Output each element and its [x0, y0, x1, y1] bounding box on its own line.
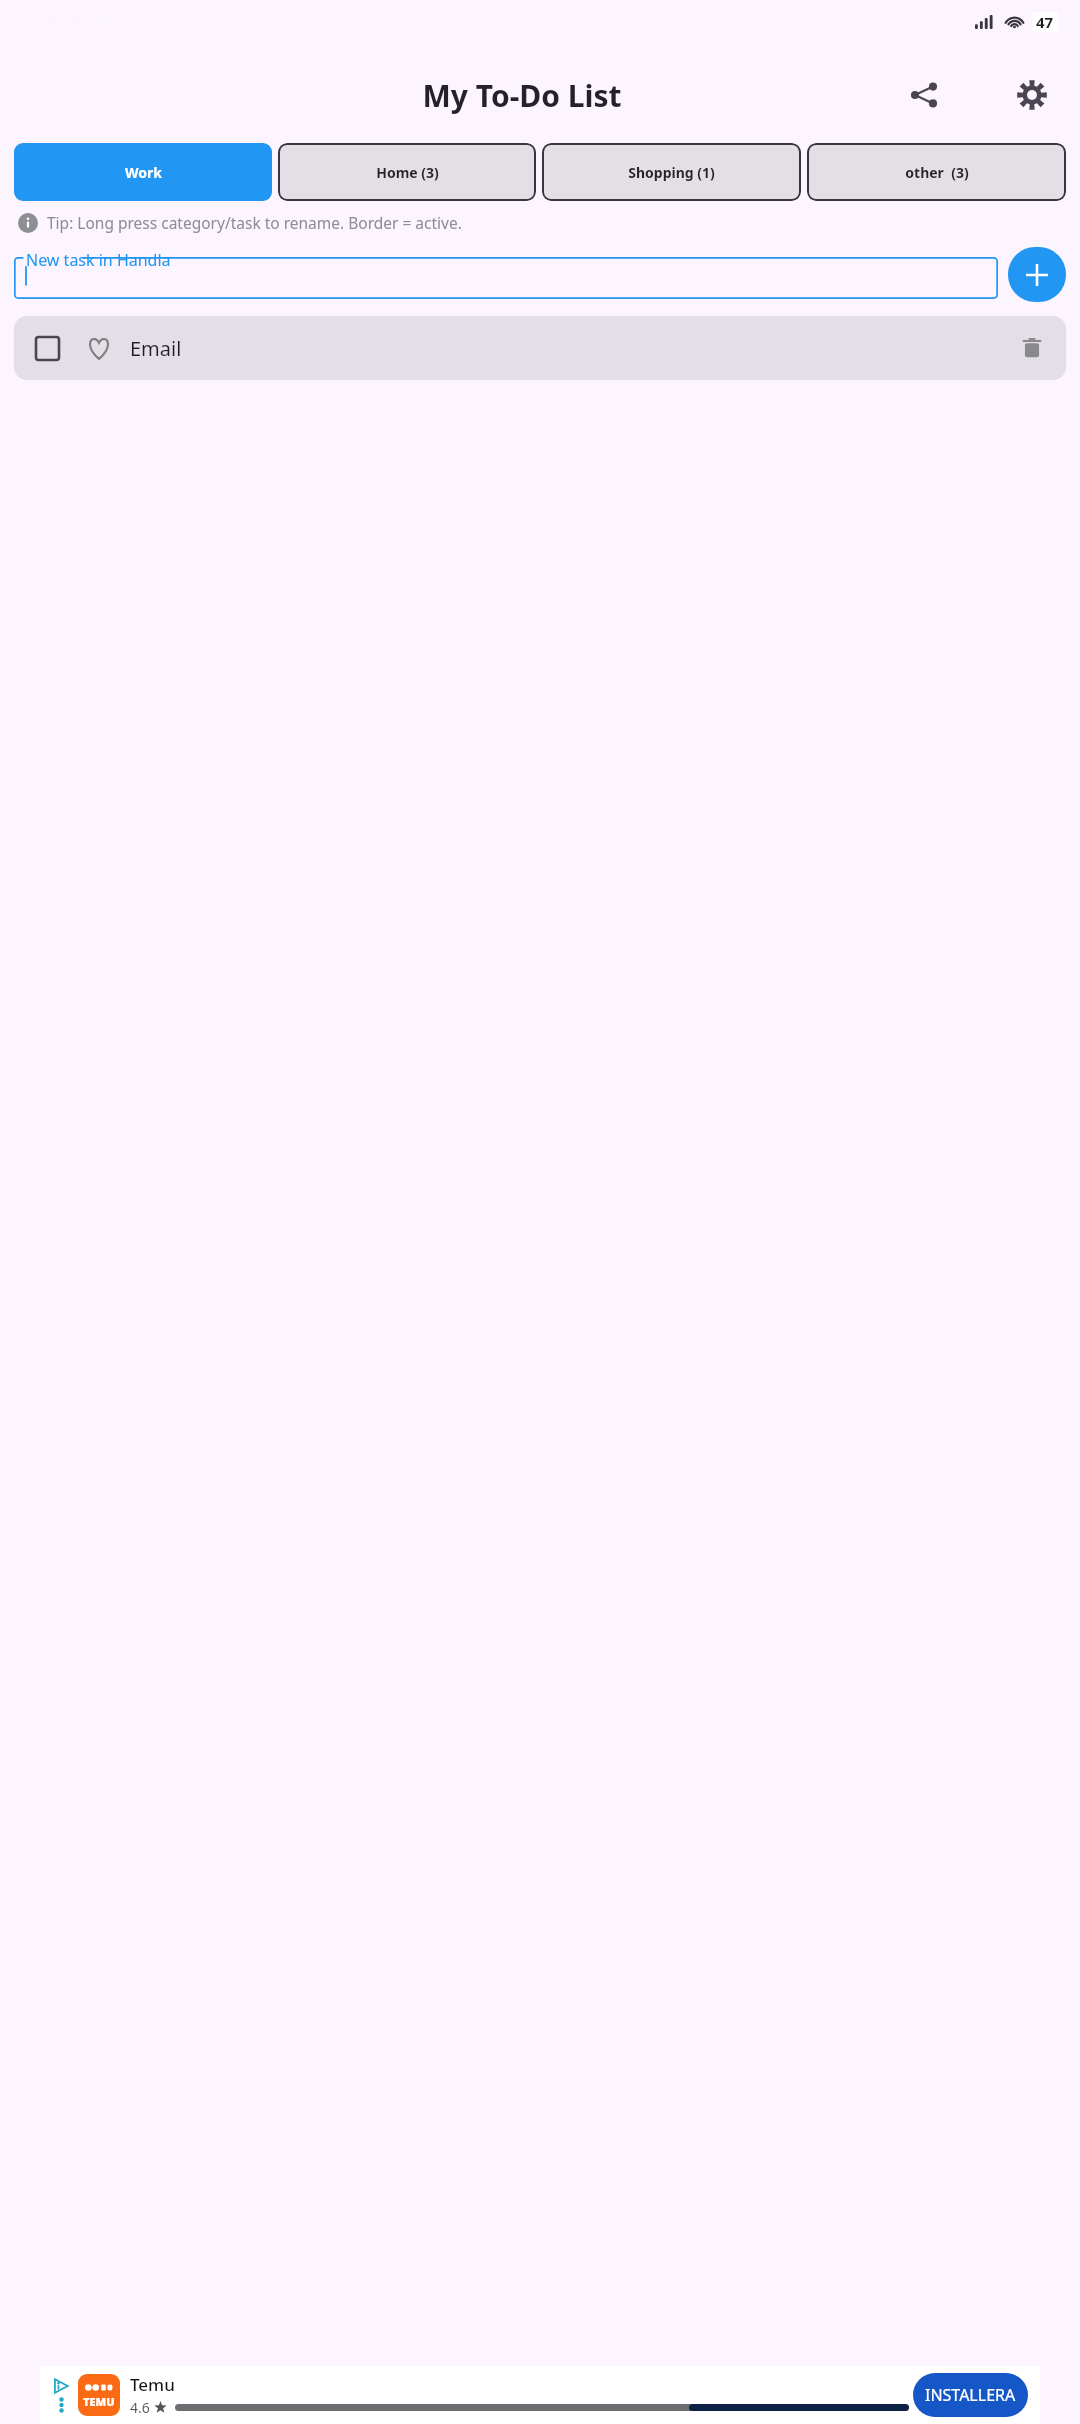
button[interactable]: Toggle done	[14, 316, 1066, 380]
staticText: TEMU	[83, 2394, 115, 2409]
button[interactable]: Settings	[1006, 69, 1058, 121]
staticText: other (3)	[905, 163, 969, 182]
button[interactable]: TEMU	[40, 2366, 1040, 2424]
button[interactable]: Shopping (1)	[542, 143, 801, 201]
button[interactable]: Work	[14, 143, 272, 201]
button[interactable]: New task in Handla	[14, 257, 998, 299]
button[interactable]: Toggle done	[28, 329, 66, 367]
button[interactable]: Delete	[1012, 328, 1052, 368]
button[interactable]: Add task	[1008, 247, 1066, 302]
staticText: Shopping (1)	[628, 163, 715, 182]
staticText: 4.6	[130, 2398, 150, 2417]
staticText: INSTALLERA	[925, 2384, 1016, 2406]
button[interactable]: Share	[898, 69, 950, 121]
staticText: 47	[1036, 12, 1054, 32]
staticText: Home (3)	[376, 163, 439, 182]
button[interactable]: Home (3)	[278, 143, 536, 201]
staticText: New task in Handla	[26, 249, 171, 271]
button[interactable]: INSTALLERA	[913, 2373, 1028, 2417]
staticText: Tip: Long press category/task to rename.…	[47, 212, 462, 233]
staticText: Work	[125, 163, 162, 182]
staticText: My To-Do List	[422, 75, 622, 116]
button[interactable]: other (3)	[807, 143, 1066, 201]
staticText: Email	[130, 335, 182, 362]
staticText: Temu	[130, 2373, 175, 2396]
button[interactable]: Favorite	[80, 329, 118, 367]
